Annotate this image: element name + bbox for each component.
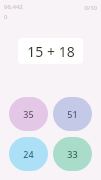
staticText: 15 + 18 xyxy=(27,42,75,61)
staticText: 35 xyxy=(23,108,34,120)
button[interactable]: 24 xyxy=(9,137,48,171)
staticText: 51 xyxy=(67,108,78,120)
staticText: 96,442 xyxy=(4,3,23,11)
button[interactable]: 33 xyxy=(53,137,92,171)
staticText: 24 xyxy=(23,148,34,160)
staticText: 0 xyxy=(4,13,8,21)
staticText: 33 xyxy=(67,148,78,160)
staticText: 0/10 xyxy=(84,4,97,12)
button[interactable]: 51 xyxy=(53,97,92,131)
button[interactable]: 35 xyxy=(9,97,48,131)
